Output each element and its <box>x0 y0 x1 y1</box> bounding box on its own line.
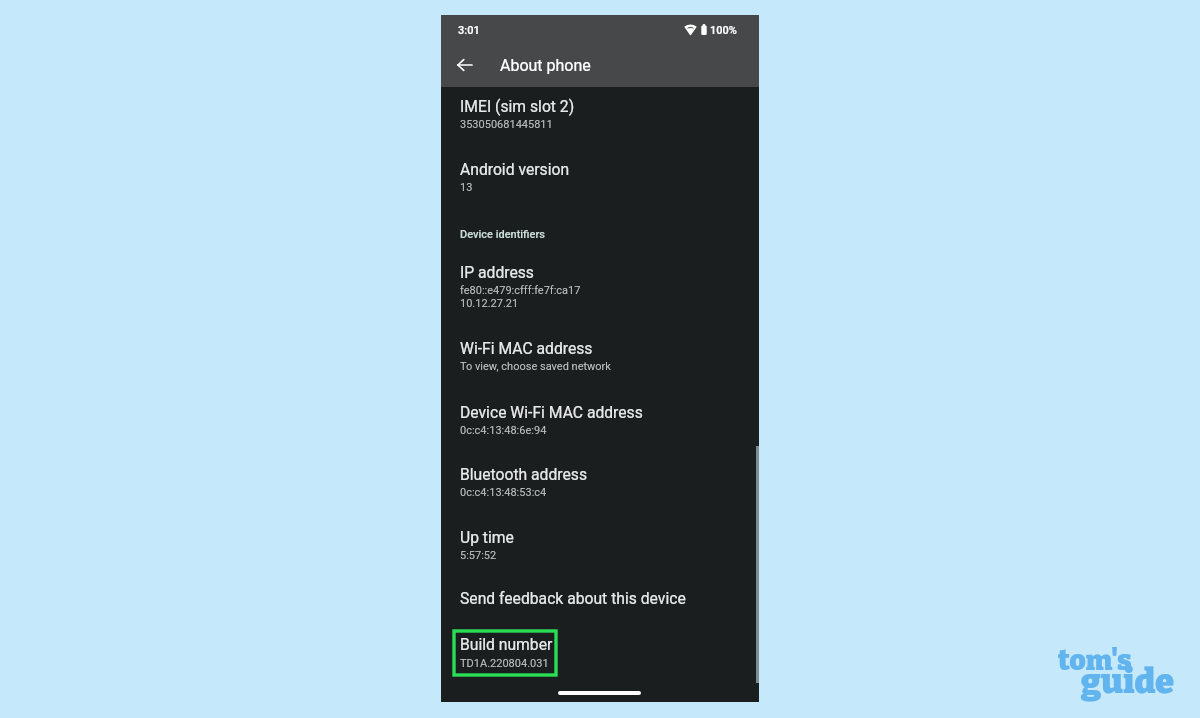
staticText: Bluetooth address <box>460 465 588 483</box>
staticText: 0c:c4:13:48:53:c4 <box>460 486 547 499</box>
staticText: Build number <box>460 635 553 653</box>
button[interactable]: IP address <box>441 263 759 311</box>
staticText: 10.12.27.21 <box>460 297 519 310</box>
button[interactable]: IMEI (sim slot 2) <box>441 97 759 132</box>
staticText: guide <box>1081 661 1175 702</box>
button[interactable]: Android version <box>441 160 759 195</box>
staticText: 5:57:52 <box>460 549 497 562</box>
button[interactable]: Wi-Fi MAC address <box>441 339 759 374</box>
button[interactable]: Send feedback about this device <box>441 589 759 611</box>
staticText: 0c:c4:13:48:6e:94 <box>460 424 547 437</box>
staticText: 353050681445811 <box>460 118 553 131</box>
staticText: To view, choose saved network <box>460 360 611 373</box>
staticText: 100% <box>710 24 737 37</box>
staticText: IMEI (sim slot 2) <box>460 97 575 115</box>
staticText: Wi-Fi MAC address <box>460 339 593 357</box>
button[interactable]: Back <box>449 51 479 79</box>
button[interactable]: Bluetooth address <box>441 465 759 500</box>
staticText: Send feedback about this device <box>460 589 686 607</box>
staticText: IP address <box>460 263 534 281</box>
staticText: Device identifiers <box>460 228 545 241</box>
staticText: About phone <box>500 56 591 75</box>
staticText: TD1A.220804.031 <box>460 657 549 670</box>
button[interactable]: Build number <box>454 631 556 675</box>
staticText: Device Wi-Fi MAC address <box>460 403 643 421</box>
staticText: tom's <box>1058 644 1132 678</box>
button[interactable]: Up time <box>441 528 759 563</box>
staticText: fe80::e479:cfff:fe7f:ca17 <box>460 284 581 297</box>
staticText: 3:01 <box>458 24 480 37</box>
staticText: Android version <box>460 160 570 178</box>
staticText: Up time <box>460 528 514 546</box>
staticText: 13 <box>460 181 473 194</box>
button[interactable]: Device Wi-Fi MAC address <box>441 403 759 438</box>
